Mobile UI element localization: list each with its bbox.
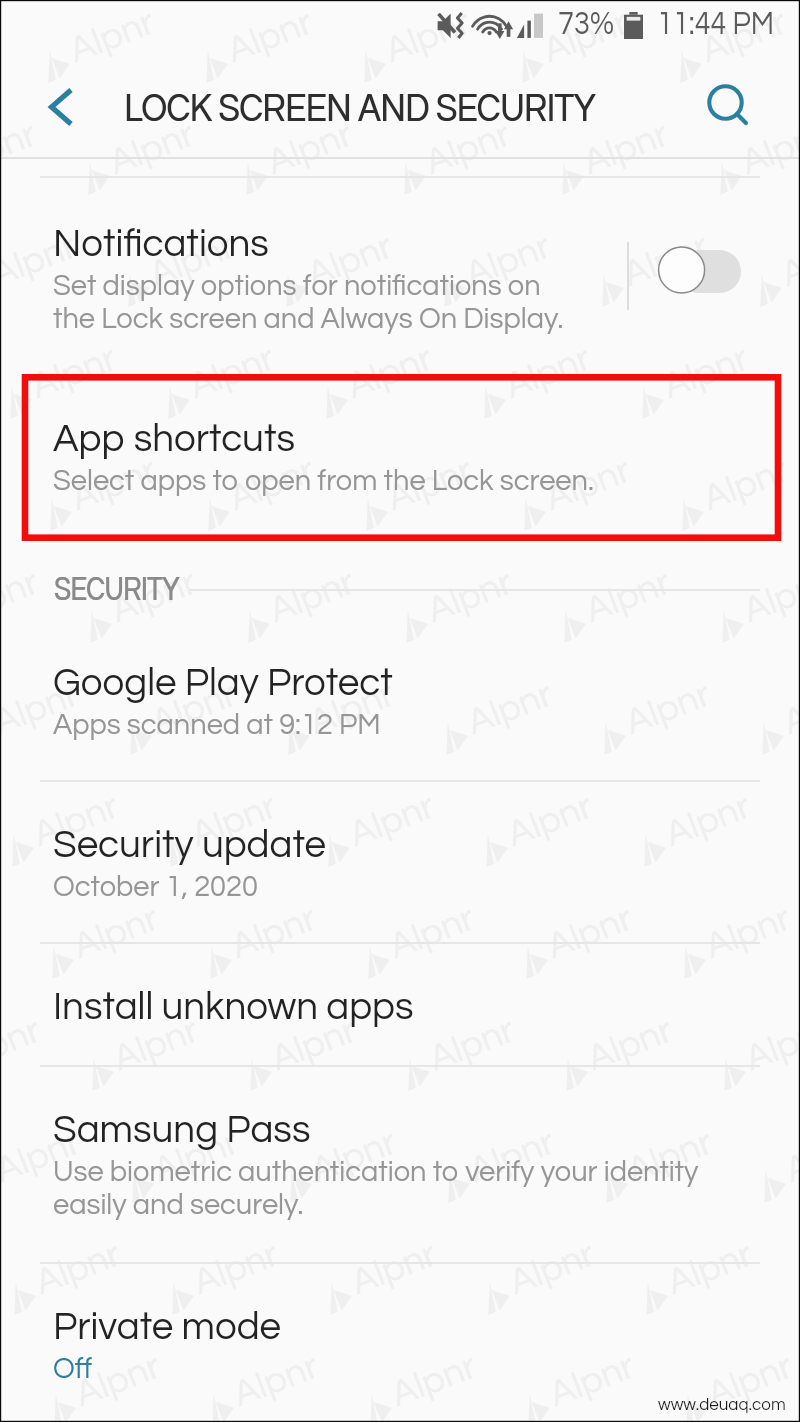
staticText: LOCK SCREEN AND SECURITY — [124, 87, 596, 129]
staticText: 73% — [558, 6, 615, 41]
staticText: Apps scanned at 9:12 PM — [53, 710, 381, 740]
staticText: Select apps to open from the Lock screen… — [53, 466, 594, 496]
staticText: SECURITY — [55, 570, 180, 607]
staticText: Security update — [53, 825, 327, 865]
staticText: Notifications — [53, 224, 269, 264]
button[interactable]: Google Play Protect — [0, 620, 800, 780]
staticText: SECURITY — [54, 570, 179, 607]
button[interactable]: Notifications — [0, 180, 625, 370]
staticText: www.deuaq.com — [658, 1396, 786, 1414]
button[interactable]: Notifications toggle — [653, 243, 749, 303]
button[interactable]: Search — [700, 78, 756, 134]
button[interactable]: Install unknown apps — [0, 944, 800, 1065]
staticText: Use biometric authentication to verify y… — [53, 1157, 699, 1220]
staticText: App shortcuts — [53, 419, 296, 459]
staticText: Set display options for notifications on… — [53, 271, 564, 334]
staticText: LOCK SCREEN AND SECURITY — [125, 87, 597, 129]
staticText: Off — [53, 1354, 93, 1384]
button[interactable]: Navigate up — [40, 81, 92, 133]
staticText: October 1, 2020 — [53, 872, 258, 902]
staticText: Google Play Protect — [53, 663, 393, 703]
button[interactable]: Security update — [0, 782, 800, 942]
button[interactable]: Samsung Pass — [0, 1067, 800, 1262]
staticText: Private mode — [53, 1307, 281, 1347]
staticText: 11:44 PM — [657, 6, 774, 41]
staticText: Install unknown apps — [53, 987, 414, 1027]
staticText: Samsung Pass — [53, 1110, 311, 1150]
button[interactable]: Private mode — [0, 1264, 800, 1422]
button[interactable]: App shortcuts — [0, 374, 800, 538]
